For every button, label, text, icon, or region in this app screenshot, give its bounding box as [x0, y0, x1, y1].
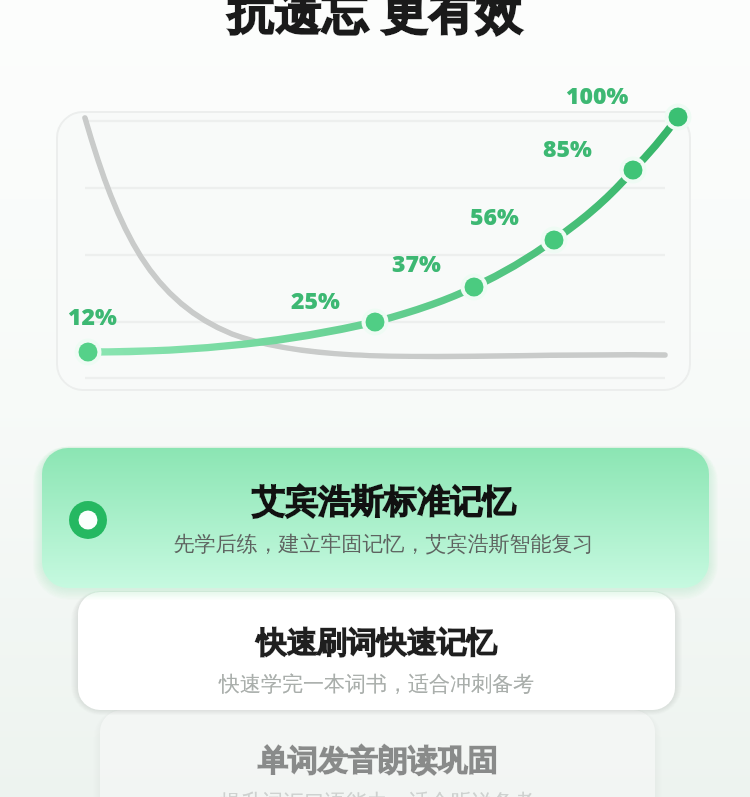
button[interactable]: 快速刷词快速记忆 — [78, 592, 675, 705]
button[interactable]: 单词发音朗读巩固 — [100, 710, 655, 797]
button[interactable]: 艾宾浩斯标准记忆 — [42, 448, 709, 588]
